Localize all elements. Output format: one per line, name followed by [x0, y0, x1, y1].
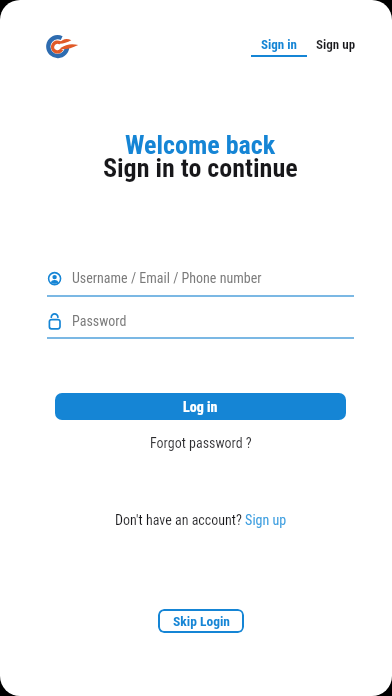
- button[interactable]: Password: [47, 308, 354, 339]
- button[interactable]: Sign in: [251, 37, 307, 57]
- button[interactable]: Skip Login: [158, 609, 244, 633]
- staticText: Sign in to continue: [103, 153, 298, 183]
- staticText: Skip Login: [173, 613, 230, 629]
- staticText: Don't have an account? Sign up: [115, 512, 287, 528]
- staticText: Sign up: [316, 37, 356, 52]
- button[interactable]: Username / Email / Phone number: [47, 266, 354, 297]
- staticText: Username / Email / Phone number: [72, 270, 262, 286]
- button[interactable]: Don't have an account? Sign up: [115, 512, 287, 528]
- staticText: Log in: [183, 399, 218, 415]
- staticText: Sign in: [261, 37, 297, 52]
- staticText: Password: [72, 313, 127, 329]
- button[interactable]: Forgot password ?: [150, 435, 252, 451]
- button[interactable]: Sign up: [316, 37, 356, 52]
- button[interactable]: Log in: [55, 393, 346, 420]
- staticText: Forgot password ?: [150, 435, 252, 451]
- staticText: Welcome back: [125, 130, 276, 160]
